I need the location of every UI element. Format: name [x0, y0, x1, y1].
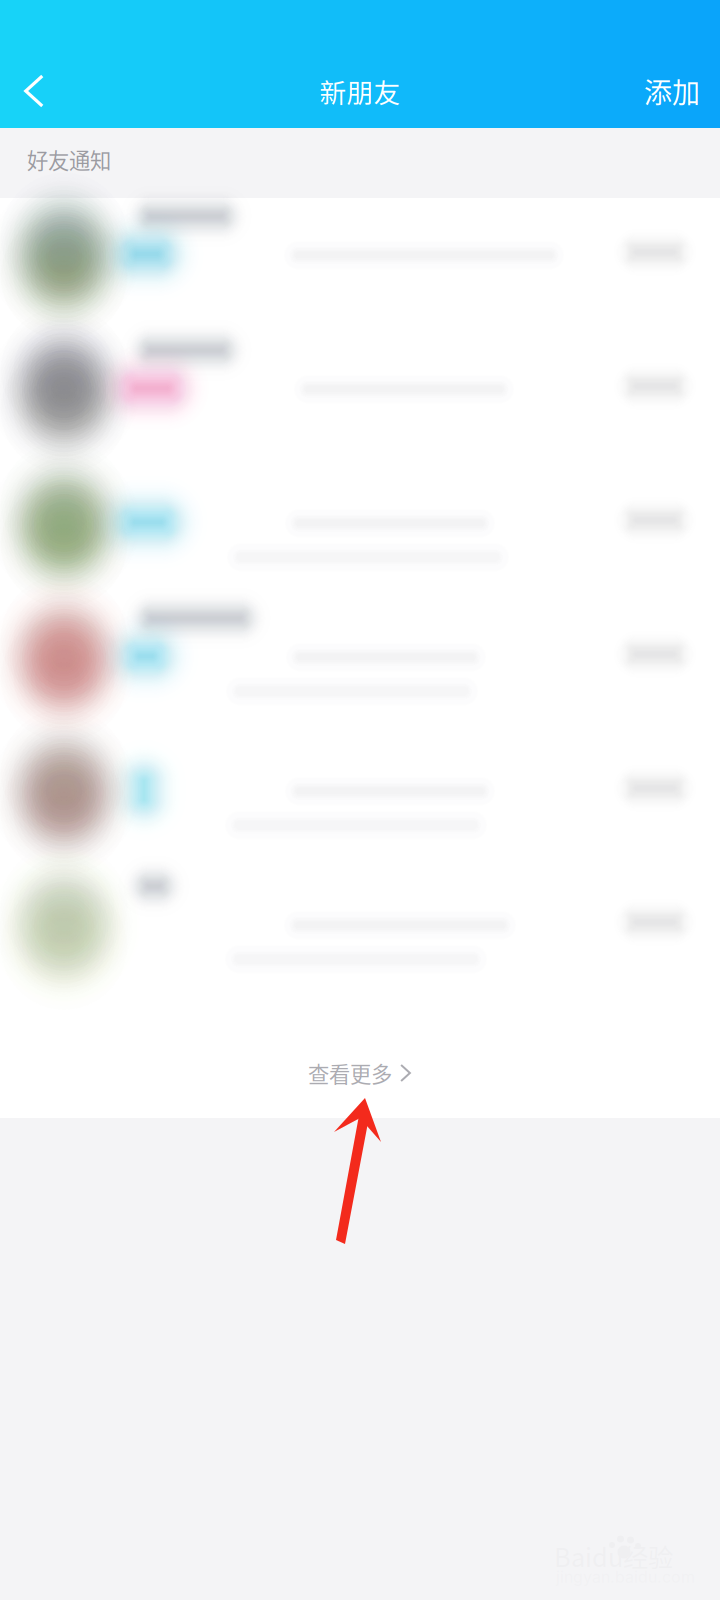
button[interactable]: Back [4, 59, 64, 123]
staticText: 好友通知 [27, 144, 111, 175]
staticText: 添加 [644, 71, 700, 111]
staticText: 查看更多 [308, 1058, 392, 1088]
staticText: 新朋友 [319, 72, 400, 110]
button[interactable]: 添加 [570, 59, 700, 123]
button[interactable]: 查看更多 [0, 1015, 720, 1131]
